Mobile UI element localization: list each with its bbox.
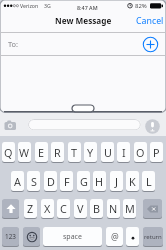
button[interactable]: Z — [24, 199, 37, 219]
staticText: 123 — [5, 232, 16, 241]
button[interactable]: To: — [0, 33, 166, 55]
staticText: To: — [8, 39, 19, 49]
button[interactable]: R — [51, 142, 64, 163]
staticText: return — [144, 233, 162, 241]
staticText: K — [129, 174, 136, 189]
button[interactable]: @ — [106, 227, 123, 247]
staticText: B — [93, 201, 101, 216]
button[interactable]: J — [110, 171, 123, 192]
staticText: C — [60, 201, 67, 216]
staticText: Y — [87, 145, 94, 160]
staticText: W — [19, 145, 30, 160]
button[interactable] — [143, 199, 162, 219]
staticText: L — [146, 174, 152, 189]
staticText: D — [47, 174, 55, 189]
staticText: New Message — [55, 15, 112, 26]
staticText: V — [77, 201, 84, 216]
staticText: Z — [27, 201, 34, 216]
button[interactable]: N — [107, 199, 120, 219]
staticText: @ — [111, 231, 119, 243]
button[interactable]: Y — [84, 142, 97, 163]
staticText: 82% — [135, 2, 147, 10]
button[interactable]: U — [101, 142, 114, 163]
staticText: P — [153, 145, 160, 160]
staticText: S — [31, 174, 37, 189]
staticText: H — [95, 174, 104, 189]
button[interactable]: V — [74, 199, 87, 219]
button[interactable] — [28, 119, 141, 130]
staticText: F — [64, 174, 70, 189]
staticText: Cancel — [136, 15, 164, 27]
staticText: N — [109, 201, 118, 216]
button[interactable] — [145, 119, 160, 134]
button[interactable]: X — [41, 199, 54, 219]
staticText: I — [122, 145, 126, 160]
staticText: M — [125, 201, 135, 216]
button[interactable]: K — [126, 171, 139, 192]
button[interactable]: S — [27, 171, 40, 192]
button[interactable]: A — [11, 171, 24, 192]
staticText: X — [44, 201, 51, 216]
button[interactable]: D — [44, 171, 57, 192]
staticText: Verizon — [20, 2, 39, 9]
button[interactable]: G — [77, 171, 90, 192]
button[interactable]: Cancel — [132, 11, 164, 32]
staticText: G — [80, 174, 88, 189]
button[interactable]: T — [68, 142, 81, 163]
staticText: space — [63, 232, 82, 242]
staticText: J — [115, 174, 118, 189]
button[interactable] — [23, 227, 40, 247]
button[interactable] — [3, 119, 18, 131]
button[interactable]: C — [57, 199, 70, 219]
button[interactable]: W — [18, 142, 31, 163]
staticText: U — [104, 145, 112, 160]
staticText: A — [14, 174, 21, 189]
button[interactable] — [126, 227, 139, 247]
staticText: Q — [4, 145, 13, 160]
button[interactable]: I — [117, 142, 130, 163]
button[interactable]: Q — [2, 142, 15, 163]
button[interactable]: F — [60, 171, 73, 192]
button[interactable]: O — [134, 142, 147, 163]
button[interactable]: B — [90, 199, 103, 219]
button[interactable]: E — [35, 142, 48, 163]
staticText: 3G — [44, 2, 51, 9]
button[interactable]: M — [123, 199, 136, 219]
staticText: T — [71, 145, 78, 160]
button[interactable]: return — [143, 227, 163, 247]
button[interactable] — [2, 199, 19, 219]
staticText: O — [136, 145, 145, 160]
button[interactable]: 123 — [2, 227, 19, 247]
staticText: 8:47 AM — [77, 4, 98, 11]
button[interactable] — [72, 105, 94, 112]
staticText: E — [38, 145, 45, 160]
button[interactable]: P — [150, 142, 163, 163]
button[interactable]: space — [43, 227, 102, 247]
staticText: R — [54, 145, 61, 160]
button[interactable]: H — [93, 171, 106, 192]
button[interactable]: L — [142, 171, 155, 192]
